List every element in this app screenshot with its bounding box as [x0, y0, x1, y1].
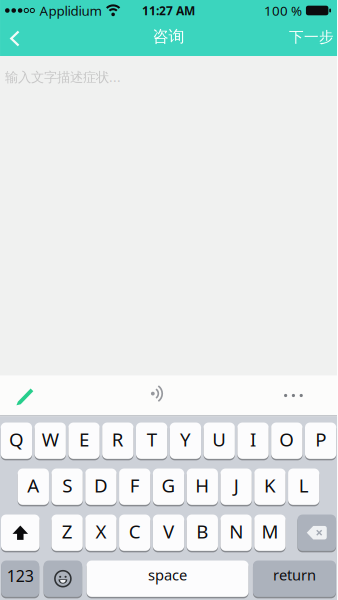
button[interactable]: 123: [1, 560, 39, 598]
button[interactable]: V: [153, 514, 184, 552]
staticText: 123: [7, 565, 34, 586]
button[interactable]: U: [204, 422, 235, 460]
staticText: Y: [180, 427, 191, 452]
button[interactable]: W: [35, 422, 66, 460]
staticText: X: [95, 519, 106, 544]
staticText: I: [250, 427, 256, 452]
button[interactable]: C: [119, 514, 150, 552]
button[interactable]: N: [220, 514, 252, 552]
staticText: A: [27, 473, 39, 498]
staticText: space: [148, 565, 187, 584]
staticText: R: [112, 427, 124, 452]
staticText: E: [79, 427, 89, 452]
button[interactable]: M: [254, 514, 286, 552]
staticText: 咨询: [152, 27, 184, 46]
button[interactable]: Q: [1, 422, 32, 460]
staticText: N: [229, 519, 243, 544]
button[interactable]: K: [254, 468, 286, 506]
staticText: V: [163, 519, 174, 544]
button[interactable]: B: [187, 514, 218, 552]
staticText: 输入文字描述症状...: [5, 68, 121, 86]
staticText: H: [195, 473, 209, 498]
button[interactable]: Z: [51, 514, 83, 552]
button[interactable]: R: [102, 422, 133, 460]
staticText: T: [147, 427, 157, 452]
button[interactable]: return: [253, 560, 336, 598]
button[interactable]: I: [237, 422, 269, 460]
button[interactable]: More options: [0, 375, 303, 397]
staticText: Applidium: [39, 2, 101, 19]
staticText: 11:27 AM: [142, 2, 195, 18]
button[interactable]: O: [271, 422, 302, 460]
button[interactable]: L: [288, 468, 319, 506]
button[interactable]: Back: [0, 21, 20, 55]
staticText: K: [264, 473, 276, 498]
button[interactable]: S: [51, 468, 83, 506]
button[interactable]: X: [85, 514, 117, 552]
button[interactable]: Voice input: [0, 375, 164, 402]
staticText: F: [130, 473, 140, 498]
button[interactable]: Emoji: [44, 560, 82, 598]
button[interactable]: Y: [170, 422, 201, 460]
button[interactable]: Delete: [297, 514, 336, 552]
staticText: 100 %: [264, 2, 302, 19]
staticText: L: [299, 473, 309, 498]
button[interactable]: A: [18, 468, 49, 506]
button[interactable]: F: [119, 468, 150, 506]
staticText: W: [42, 427, 59, 452]
button[interactable]: J: [220, 468, 252, 506]
staticText: P: [315, 427, 326, 452]
button[interactable]: H: [187, 468, 218, 506]
staticText: M: [261, 519, 278, 544]
staticText: U: [212, 427, 226, 452]
button[interactable]: E: [68, 422, 100, 460]
button[interactable]: T: [136, 422, 167, 460]
staticText: 下一步: [289, 28, 334, 46]
button[interactable]: Handwriting input: [0, 375, 34, 406]
button[interactable]: P: [305, 422, 336, 460]
button[interactable]: space: [87, 560, 248, 598]
button[interactable]: 下一步: [289, 21, 337, 56]
staticText: Z: [62, 519, 73, 544]
button[interactable]: G: [153, 468, 184, 506]
staticText: Q: [9, 427, 24, 452]
button[interactable]: Shift: [1, 514, 40, 552]
staticText: D: [94, 473, 108, 498]
staticText: return: [273, 565, 316, 584]
staticText: G: [161, 473, 175, 498]
staticText: S: [62, 473, 72, 498]
staticText: O: [279, 427, 294, 452]
staticText: J: [234, 473, 239, 498]
staticText: C: [129, 519, 141, 544]
staticText: B: [196, 519, 208, 544]
button[interactable]: D: [85, 468, 117, 506]
